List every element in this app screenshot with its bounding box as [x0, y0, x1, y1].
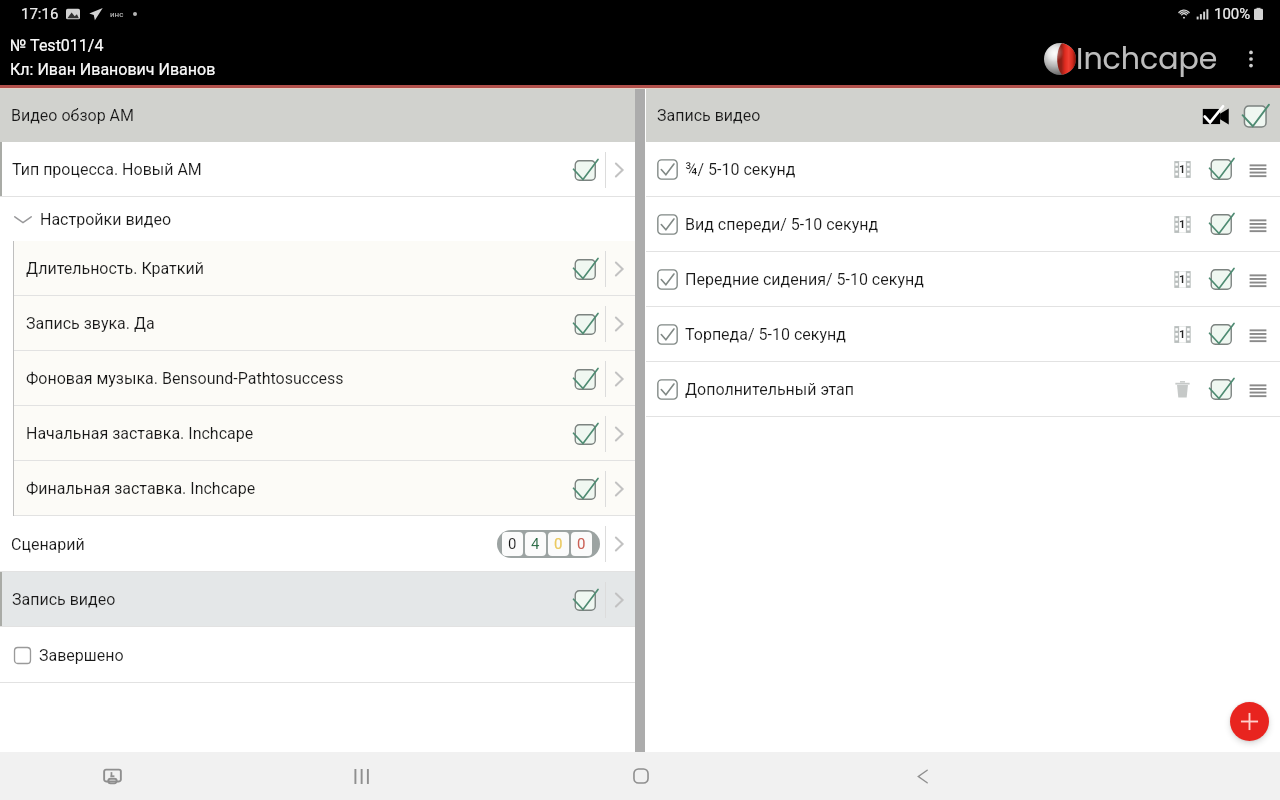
button[interactable]: Завершено — [0, 627, 635, 683]
staticText: Передние сидения/ 5-10 секунд — [685, 270, 924, 289]
staticText: Начальная заставка. Inchcape — [26, 424, 254, 443]
staticText: Финальная заставка. Inchcape — [26, 479, 256, 498]
staticText: 0 — [577, 535, 586, 553]
staticText: 1 — [1179, 163, 1186, 176]
button[interactable]: Check all — [1236, 97, 1274, 135]
button[interactable]: Торпеда/ 5-10 секунд — [646, 307, 1280, 362]
staticText: Запись видео — [12, 590, 116, 609]
staticText: 1 — [1179, 328, 1186, 341]
button[interactable]: Show keyboard — [82, 752, 142, 800]
button[interactable]: Дополнительный этап — [646, 362, 1280, 417]
staticText: 100% — [1214, 5, 1251, 23]
button[interactable]: Длительность. Краткий — [0, 241, 635, 296]
button[interactable]: Вид спереди/ 5-10 секунд — [646, 197, 1280, 252]
staticText: ¾/ 5-10 секунд — [685, 160, 796, 179]
staticText: Торпеда/ 5-10 секунд — [685, 325, 846, 344]
staticText: 1 — [1179, 218, 1186, 231]
button[interactable]: Home — [611, 752, 671, 800]
staticText: Запись видео — [657, 106, 761, 125]
staticText: Фоновая музыка. Bensound-Pathtosuccess — [26, 369, 344, 388]
button[interactable]: Запись звука. Да — [0, 296, 635, 351]
button[interactable]: Back — [892, 752, 952, 800]
staticText: 4 — [531, 535, 540, 553]
button[interactable]: Настройки видео — [0, 197, 635, 241]
staticText: № Test011/4 — [10, 36, 104, 55]
staticText: Тип процесса. Новый АМ — [12, 160, 202, 179]
staticText: 0 — [508, 535, 517, 553]
staticText: Запись звука. Да — [26, 314, 155, 333]
button[interactable]: Передние сидения/ 5-10 секунд — [646, 252, 1280, 307]
staticText: Длительность. Краткий — [26, 259, 204, 278]
button[interactable]: Фоновая музыка. Bensound-Pathtosuccess — [0, 351, 635, 406]
staticText: Кл: Иван Иванович Иванов — [10, 60, 216, 79]
staticText: Дополнительный этап — [685, 380, 854, 399]
staticText: 0 — [554, 535, 563, 553]
button[interactable]: Начальная заставка. Inchcape — [0, 406, 635, 461]
staticText: Сценарий — [11, 535, 85, 554]
button[interactable]: Сценарий — [0, 516, 635, 572]
staticText: Видео обзор АМ — [11, 106, 135, 125]
staticText: 17:16 — [21, 5, 59, 23]
staticText: Inchcape — [1076, 38, 1218, 80]
button[interactable]: Тип процесса. Новый АМ — [0, 142, 635, 197]
staticText: Настройки видео — [40, 210, 172, 229]
button[interactable]: Recent apps — [331, 752, 391, 800]
button[interactable]: Add stage — [1230, 702, 1269, 741]
staticText: инс — [110, 10, 124, 19]
button[interactable]: Финальная заставка. Inchcape — [0, 461, 635, 516]
button[interactable]: More options — [1238, 46, 1264, 72]
staticText: 1 — [1179, 273, 1186, 286]
staticText: Завершено — [39, 646, 124, 665]
button[interactable]: ¾/ 5-10 секунд — [646, 142, 1280, 197]
button[interactable]: Запись видео — [0, 572, 635, 627]
staticText: Вид спереди/ 5-10 секунд — [685, 215, 879, 234]
button[interactable]: Record all videos — [1196, 97, 1234, 135]
